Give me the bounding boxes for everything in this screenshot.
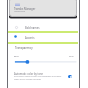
staticText: Bold names [25,26,40,30]
other: Automatic color by tone toggle [68,75,72,78]
staticText: Appearance [14,10,26,13]
staticText: Accents [25,36,35,40]
button[interactable]: Bold names [8,23,78,31]
button[interactable]: Blur amount slider [12,58,78,66]
button[interactable]: Automatic color by tone [8,70,78,82]
staticText: Blur [14,54,19,57]
staticText: Transparency [15,46,33,50]
staticText: 35% [69,55,74,58]
staticText: Tweaks Manager [14,7,36,11]
button[interactable]: Tweaks Manager [9,0,77,17]
staticText: Pick accent colours from your wallpaper … [14,75,63,81]
staticText: Automatic color by tone [14,72,44,76]
button[interactable]: Accents [8,33,78,41]
